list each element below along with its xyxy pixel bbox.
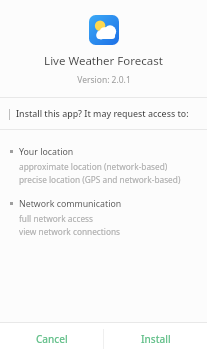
other: Live Weather Forecast app icon	[89, 15, 119, 45]
button[interactable]: Install	[104, 323, 207, 355]
staticText: precise location (GPS and network-based)	[19, 174, 181, 185]
staticText: approximate location (network-based)	[19, 161, 168, 172]
staticText: Network communication	[19, 198, 122, 210]
staticText: Version: 2.0.1	[77, 74, 131, 86]
staticText: Install this app? It may request access …	[16, 108, 189, 120]
staticText: Cancel	[36, 332, 68, 346]
staticText: Your location	[19, 146, 74, 158]
staticText: full network access	[19, 213, 94, 224]
staticText: Live Weather Forecast	[44, 53, 163, 69]
staticText: view network connections	[19, 226, 121, 237]
button[interactable]: Cancel	[0, 323, 103, 355]
staticText: Install	[141, 332, 171, 346]
